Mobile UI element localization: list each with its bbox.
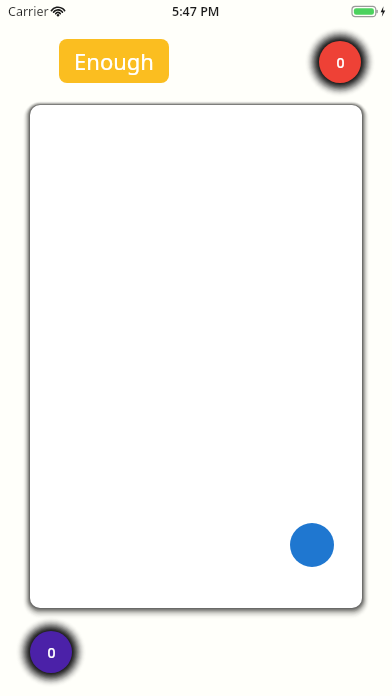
button[interactable]: Add (290, 523, 334, 567)
staticText: 5:47 PM (172, 3, 220, 20)
staticText: 0 (336, 53, 345, 72)
button[interactable]: 0 (30, 631, 72, 673)
staticText: Enough (74, 46, 154, 76)
staticText: Carrier (8, 3, 49, 20)
button[interactable]: 0 (319, 41, 361, 83)
staticText: 0 (47, 643, 56, 662)
button[interactable]: Enough (59, 39, 169, 83)
button[interactable]: Add (30, 105, 362, 608)
